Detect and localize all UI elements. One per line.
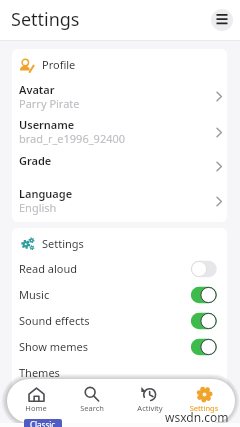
staticText: Themes bbox=[19, 365, 60, 380]
button[interactable] bbox=[12, 284, 227, 306]
button[interactable] bbox=[12, 258, 227, 280]
staticText: Settings bbox=[11, 7, 80, 32]
button[interactable] bbox=[178, 383, 230, 417]
button[interactable] bbox=[66, 383, 118, 417]
staticText: English bbox=[19, 200, 57, 215]
staticText: Settings bbox=[178, 403, 230, 413]
button[interactable] bbox=[12, 185, 227, 217]
button[interactable]: Menu bbox=[211, 9, 233, 31]
staticText: Grade bbox=[19, 153, 52, 168]
button[interactable] bbox=[12, 79, 227, 115]
staticText: Show memes bbox=[19, 339, 89, 354]
staticText: Read aloud bbox=[19, 261, 78, 276]
staticText: brad_r_e1996_92400 bbox=[19, 131, 126, 146]
staticText: Username bbox=[19, 117, 75, 132]
button[interactable] bbox=[12, 364, 227, 384]
staticText: Search bbox=[66, 403, 118, 413]
staticText: Classic bbox=[30, 419, 56, 427]
button[interactable] bbox=[12, 114, 227, 150]
button[interactable] bbox=[12, 310, 227, 332]
button[interactable] bbox=[10, 383, 62, 417]
staticText: Profile bbox=[42, 57, 76, 72]
button[interactable] bbox=[12, 153, 227, 179]
staticText: Language bbox=[19, 186, 73, 201]
staticText: Home bbox=[10, 403, 62, 413]
button[interactable] bbox=[12, 336, 227, 358]
staticText: Music bbox=[19, 287, 50, 302]
staticText: Sound effects bbox=[19, 313, 90, 328]
staticText: Avatar bbox=[19, 82, 55, 97]
staticText: Settings bbox=[42, 236, 84, 251]
button[interactable] bbox=[124, 383, 176, 417]
staticText: wsxdn.com bbox=[165, 409, 229, 425]
staticText: Activity bbox=[124, 403, 176, 413]
staticText: Parry Pirate bbox=[19, 96, 80, 111]
